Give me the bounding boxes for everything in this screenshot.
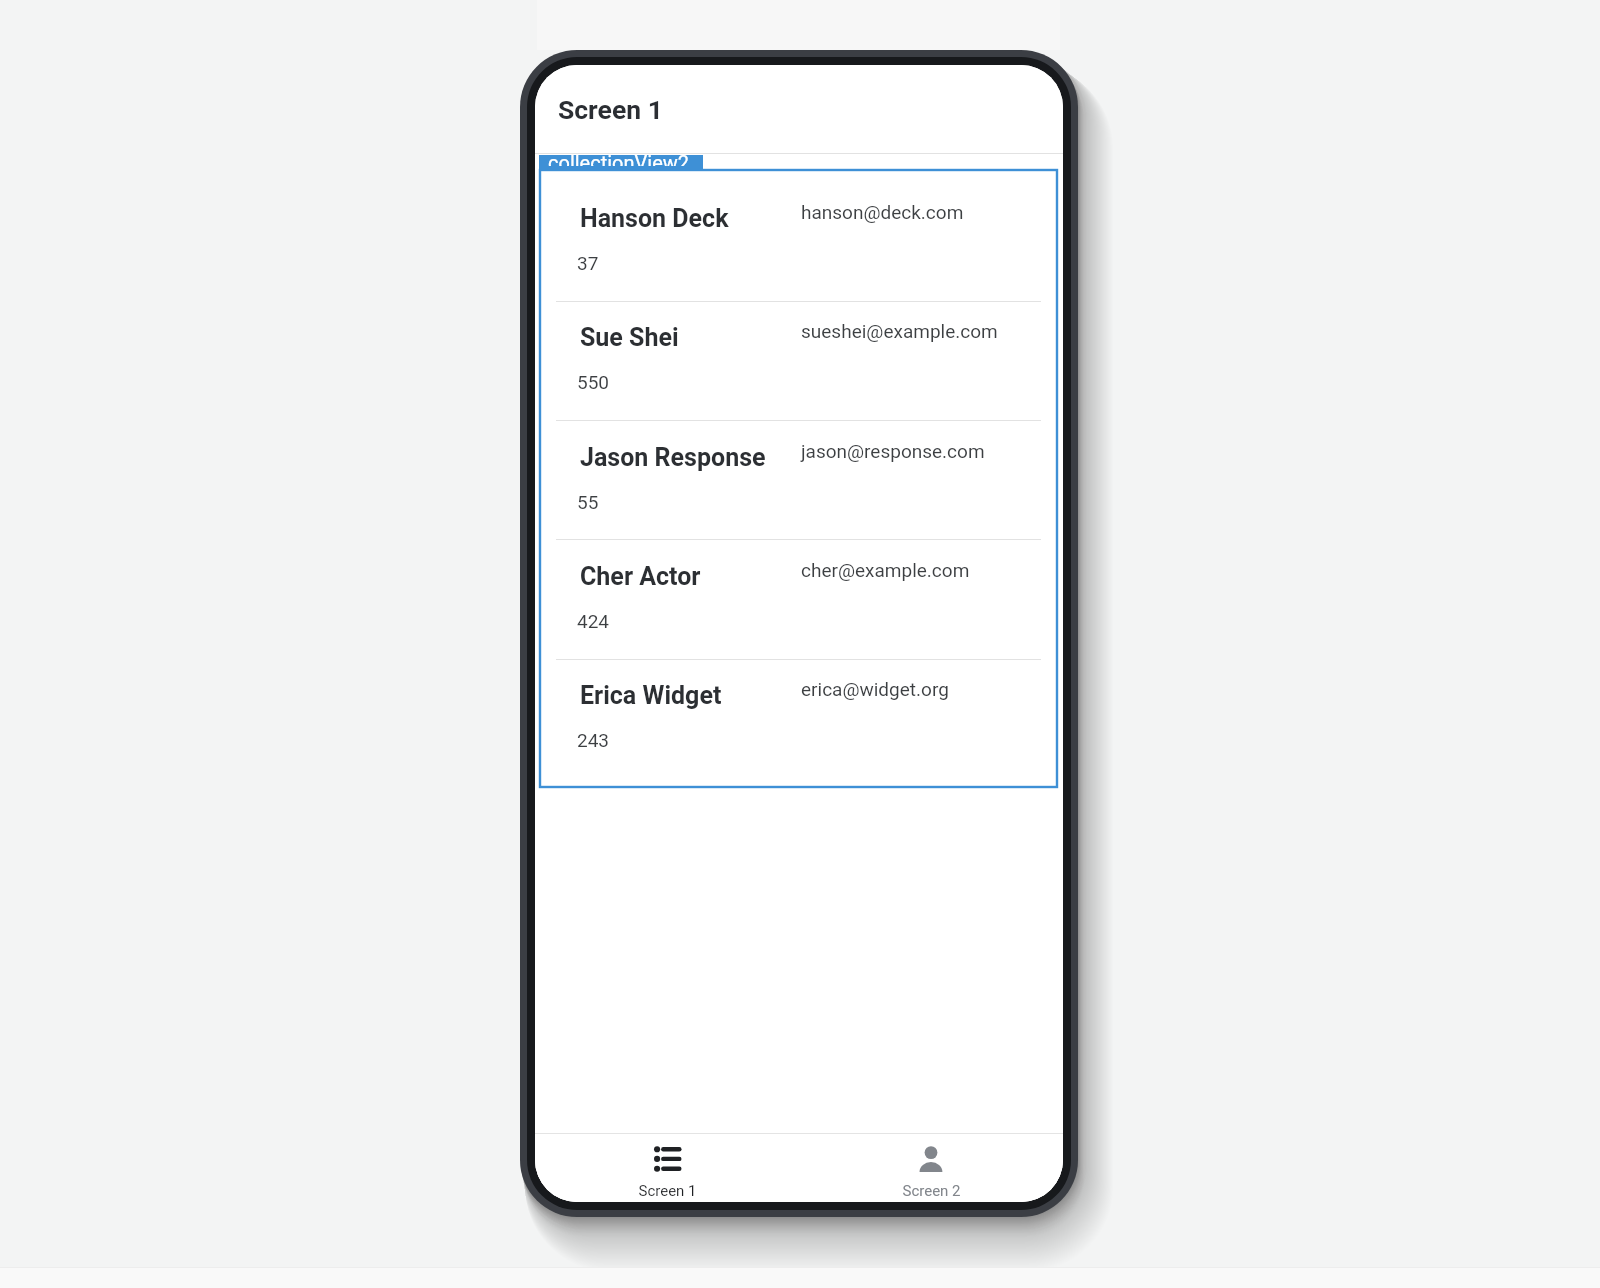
staticText: Screen 1 <box>638 1182 697 1200</box>
staticText: 55 <box>577 491 599 513</box>
staticText: hanson@deck.com <box>801 201 964 223</box>
staticText: Hanson Deck <box>580 204 729 233</box>
staticText: Jason Response <box>580 443 766 472</box>
staticText: Erica Widget <box>580 681 722 710</box>
button[interactable]: Erica Widget <box>539 658 1058 777</box>
staticText: Screen 2 <box>902 1182 961 1200</box>
staticText: erica@widget.org <box>801 678 949 700</box>
staticText: Screen 1 <box>558 94 663 125</box>
staticText: 37 <box>577 252 599 274</box>
button[interactable]: Screen 2 <box>799 1134 1063 1202</box>
staticText: sueshei@example.com <box>801 320 998 342</box>
staticText: Cher Actor <box>580 562 701 591</box>
button[interactable]: Sue Shei <box>539 300 1058 419</box>
staticText: Sue Shei <box>580 323 679 352</box>
staticText: collectionView2 <box>548 151 690 166</box>
staticText: jason@response.com <box>801 440 985 462</box>
button[interactable]: Jason Response <box>539 420 1058 539</box>
staticText: cher@example.com <box>801 559 970 581</box>
staticText: 550 <box>577 371 610 393</box>
staticText: 243 <box>577 729 610 751</box>
button[interactable]: Cher Actor <box>539 539 1058 658</box>
button[interactable]: Hanson Deck <box>539 181 1058 300</box>
button[interactable]: Screen 1 <box>535 1134 799 1202</box>
staticText: 424 <box>577 610 610 632</box>
